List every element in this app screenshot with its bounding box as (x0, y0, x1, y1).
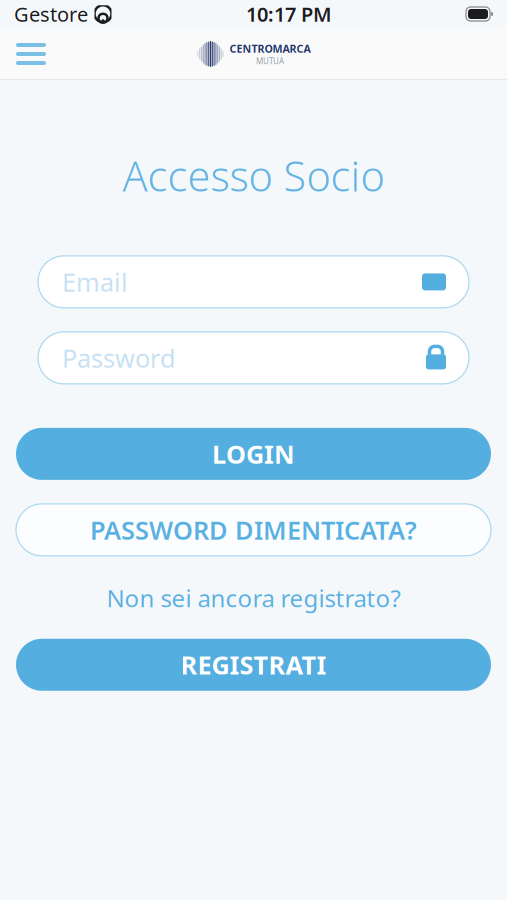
staticText: CENTROMARCA (229, 42, 310, 56)
button[interactable]: PASSWORD DIMENTICATA? (16, 504, 491, 556)
button[interactable]: Non sei ancora registrato? (86, 574, 420, 622)
staticText: LOGIN (212, 437, 295, 471)
staticText: MUTUA (256, 56, 284, 66)
staticText: REGISTRATI (180, 648, 326, 681)
button[interactable]: Menu (0, 29, 62, 79)
staticText: Password (62, 341, 176, 375)
staticText: Non sei ancora registrato? (106, 582, 400, 614)
staticText: ⌄ (423, 273, 445, 304)
staticText: Accesso Socio (122, 148, 384, 203)
button[interactable]: REGISTRATI (16, 639, 491, 691)
staticText: Email (62, 265, 128, 299)
button[interactable]: LOGIN (16, 428, 491, 480)
staticText: 10:17 PM (246, 1, 332, 27)
staticText: PASSWORD DIMENTICATA? (90, 513, 417, 547)
staticText: Gestore (14, 1, 88, 27)
